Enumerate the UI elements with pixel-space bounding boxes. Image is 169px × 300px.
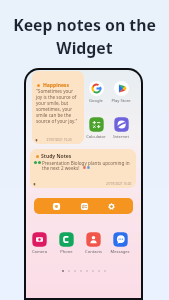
staticText: Keep notes on the Widget — [8, 14, 161, 58]
staticText: Google — [89, 98, 103, 104]
staticText: 27/07/2021 15:20 — [106, 182, 132, 186]
staticText: Camera — [32, 249, 47, 255]
button[interactable]: Camera — [28, 232, 50, 255]
staticText: Presentation Biology plants upcoming in … — [42, 160, 131, 172]
button[interactable]: Internet — [110, 117, 132, 140]
staticText: Phone — [60, 249, 73, 255]
button[interactable]: New note — [50, 200, 62, 212]
staticText: Study Notes — [41, 153, 72, 160]
button[interactable]: Happiness — [32, 71, 84, 144]
staticText: "Sometimes your joy is the source of you… — [36, 88, 78, 124]
staticText: Happiness — [43, 82, 69, 89]
button[interactable]: Phone — [55, 232, 77, 255]
button[interactable]: Calculator — [85, 117, 107, 140]
button[interactable]: Study Notes — [30, 149, 136, 188]
staticText: Contacts — [85, 249, 102, 255]
staticText: Messages — [110, 249, 130, 255]
button[interactable]: Contacts — [82, 232, 104, 255]
button[interactable]: Messages — [109, 232, 131, 255]
button[interactable]: Checklist — [78, 200, 90, 212]
staticText: Play Store — [111, 98, 131, 104]
staticText: Internet — [113, 134, 129, 140]
button[interactable]: Settings — [105, 200, 117, 212]
staticText: Calculator — [86, 134, 106, 140]
staticText: 27/07/2021 15:20 — [38, 138, 80, 142]
button[interactable]: Play Store — [110, 81, 132, 104]
button[interactable]: Google — [85, 81, 107, 104]
